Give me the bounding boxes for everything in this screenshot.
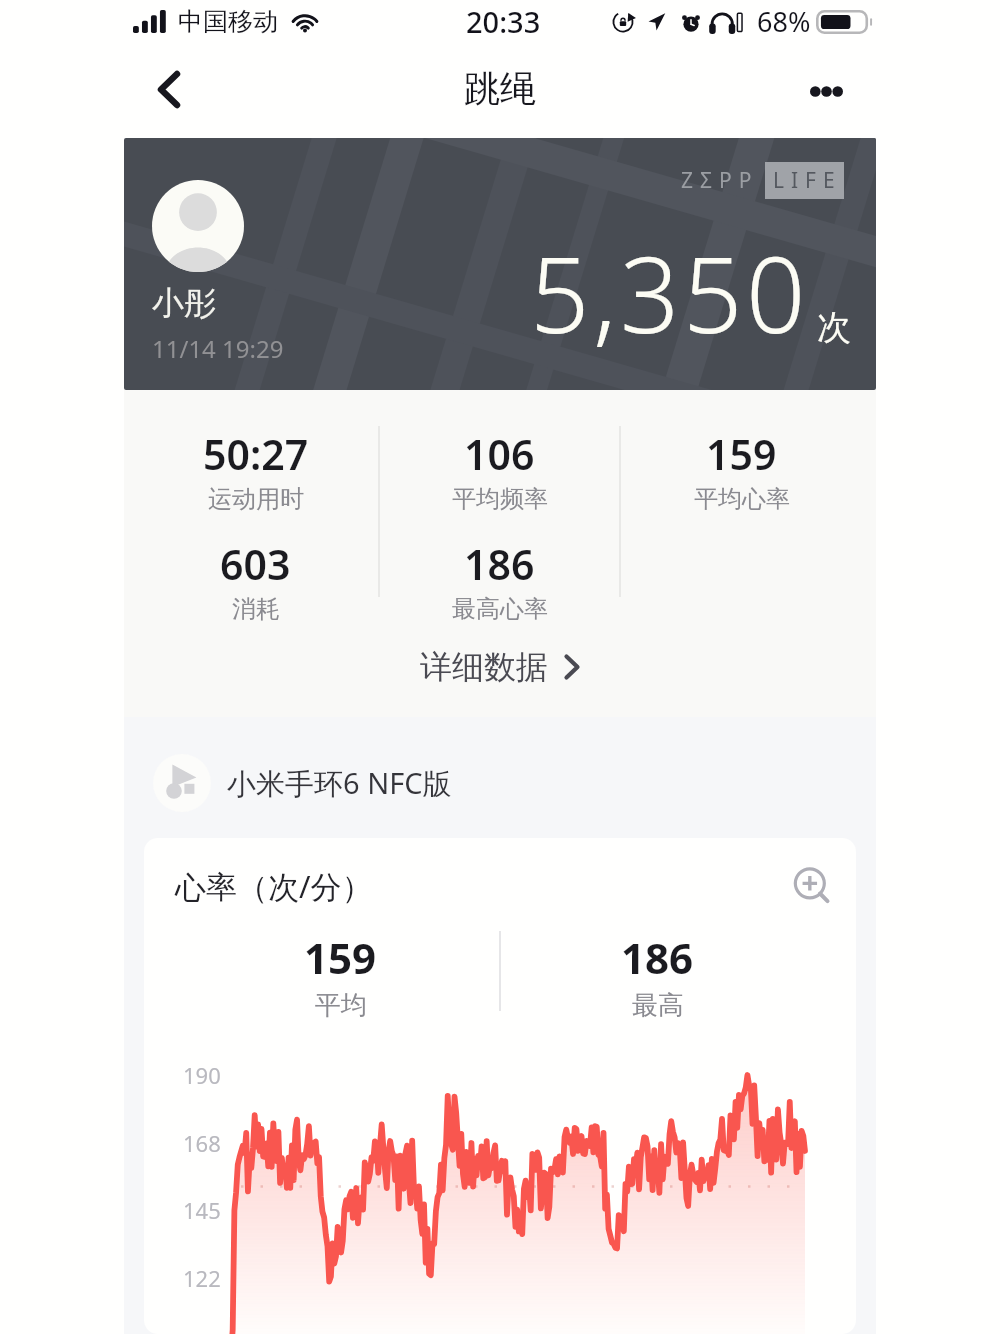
- staticText: 122: [183, 1263, 221, 1293]
- staticText: 平均频率: [452, 484, 548, 514]
- staticText: 详细数据: [420, 647, 548, 687]
- button[interactable]: 小米手环6 NFC版: [0, 717, 1000, 838]
- staticText: 小彤: [152, 283, 216, 323]
- staticText: 603: [220, 536, 291, 592]
- staticText: 平均心率: [694, 484, 790, 514]
- staticText: 最高心率: [452, 594, 548, 624]
- button[interactable]: More options: [795, 63, 857, 119]
- staticText: 运动用时: [208, 484, 304, 514]
- staticText: 20:33: [466, 2, 541, 41]
- staticText: ZΣPP: [681, 166, 759, 195]
- staticText: 106: [464, 426, 535, 482]
- staticText: 消耗: [232, 594, 280, 624]
- staticText: 小米手环6 NFC版: [227, 763, 452, 803]
- staticText: 11/14 19:29: [152, 332, 284, 365]
- button[interactable]: Back: [141, 61, 197, 117]
- staticText: 186: [464, 536, 535, 592]
- button[interactable]: 详细数据: [124, 643, 876, 691]
- staticText: 次: [817, 306, 851, 349]
- staticText: 50:27: [203, 426, 309, 482]
- staticText: 159: [304, 929, 377, 986]
- staticText: 190: [183, 1060, 221, 1090]
- staticText: 68%: [757, 3, 811, 40]
- staticText: 186: [621, 929, 694, 986]
- staticText: 最高: [632, 989, 684, 1022]
- staticText: 5,350: [530, 222, 809, 364]
- staticText: 145: [183, 1195, 221, 1225]
- staticText: 平均: [315, 989, 367, 1022]
- staticText: LIFE: [773, 166, 842, 195]
- staticText: 159: [706, 426, 777, 482]
- staticText: 心率（次/分）: [175, 865, 373, 907]
- staticText: 跳绳: [464, 66, 536, 111]
- staticText: 中国移动: [178, 6, 278, 37]
- staticText: 168: [183, 1128, 221, 1158]
- button[interactable]: Zoom in: [790, 862, 838, 910]
